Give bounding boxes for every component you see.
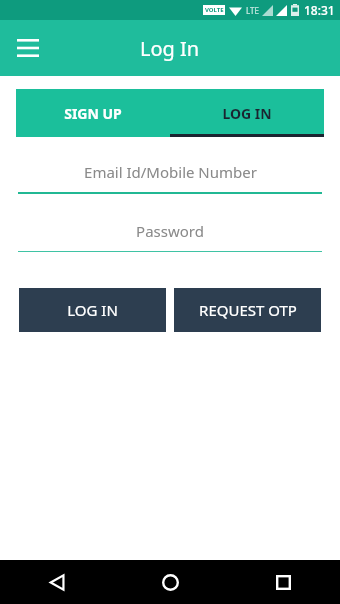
button[interactable]: Recent apps bbox=[227, 560, 340, 604]
staticText: Log In bbox=[140, 35, 200, 62]
button[interactable]: Home bbox=[114, 560, 227, 604]
staticText: SIGN UP bbox=[64, 104, 122, 123]
staticText: Email Id/Mobile Number bbox=[84, 162, 257, 182]
button[interactable]: Email Id/Mobile Number bbox=[18, 159, 322, 194]
staticText: LOG IN bbox=[222, 104, 272, 123]
button[interactable]: Password bbox=[18, 218, 322, 252]
button[interactable]: LOG IN bbox=[170, 89, 324, 137]
staticText: REQUEST OTP bbox=[199, 300, 297, 320]
button[interactable]: SIGN UP bbox=[16, 89, 170, 137]
staticText: LTE bbox=[246, 5, 259, 16]
staticText: Password bbox=[136, 221, 204, 241]
button[interactable]: LOG IN bbox=[19, 288, 166, 332]
button[interactable]: Back bbox=[0, 560, 114, 604]
staticText: 18:31 bbox=[304, 2, 335, 18]
button[interactable]: REQUEST OTP bbox=[174, 288, 321, 332]
staticText: VOLTE bbox=[205, 6, 224, 14]
button[interactable]: Open navigation menu bbox=[8, 28, 48, 68]
staticText: LOG IN bbox=[67, 300, 118, 320]
